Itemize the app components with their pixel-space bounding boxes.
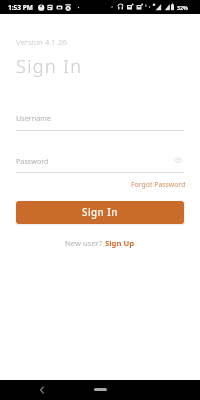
staticText: Forgot Password — [131, 180, 186, 189]
staticText: 1:53 PM — [8, 3, 33, 12]
button[interactable]: Forgot Password — [129, 180, 184, 189]
button[interactable]: Sign Up — [105, 238, 135, 248]
staticText: Sign Up — [105, 238, 135, 248]
staticText: Password — [16, 156, 170, 166]
staticText: 32% — [177, 4, 188, 11]
button[interactable]: Back — [36, 384, 48, 396]
button[interactable]: Home — [94, 388, 107, 391]
button[interactable]: Sign In — [16, 201, 184, 224]
staticText: Sign In — [16, 54, 83, 79]
button[interactable]: Show password — [171, 153, 185, 167]
staticText: Username — [16, 113, 51, 123]
staticText: Version 4.1.26 — [16, 37, 67, 48]
staticText: Sign In — [82, 206, 118, 219]
staticText: New user? — [65, 238, 105, 248]
